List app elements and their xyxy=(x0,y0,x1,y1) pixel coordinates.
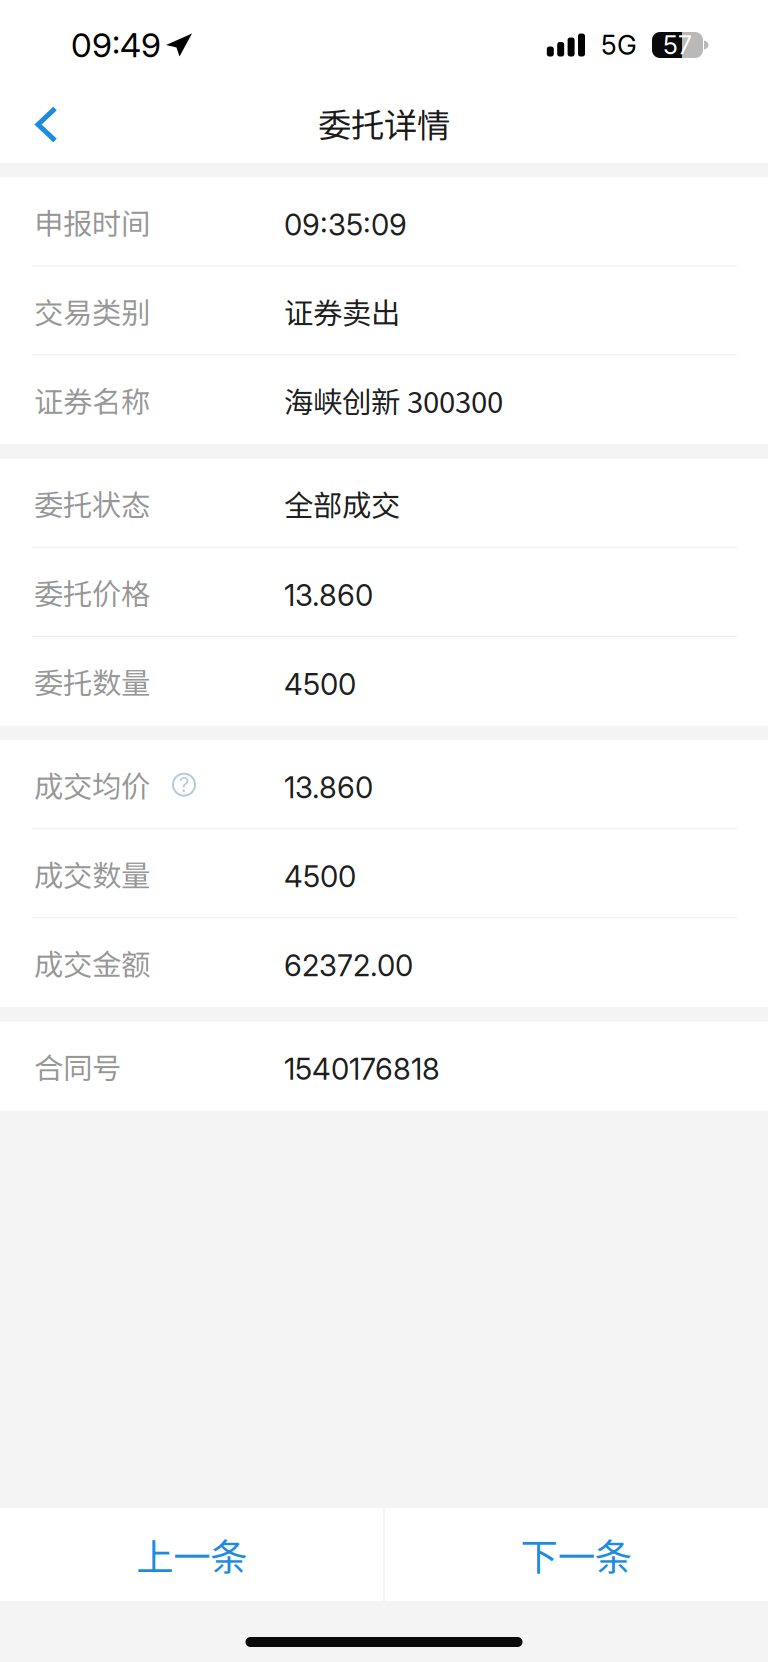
staticText: 09:49 xyxy=(71,25,161,65)
staticText: 13.860 xyxy=(284,770,373,805)
staticText: 09:35:09 xyxy=(284,207,407,243)
staticText: 委托状态 xyxy=(34,482,150,525)
staticText: 证券名称 xyxy=(34,379,150,421)
staticText: 62372.00 xyxy=(284,948,413,983)
button[interactable]: 下一条 xyxy=(385,1508,768,1601)
staticText: 4500 xyxy=(284,859,356,894)
staticText: 成交均价 xyxy=(34,763,150,806)
staticText: 1540176818 xyxy=(284,1051,440,1087)
staticText: 合同号 xyxy=(34,1045,121,1087)
staticText: 申报时间 xyxy=(34,201,150,243)
staticText: 委托价格 xyxy=(34,571,150,614)
staticText: 13.860 xyxy=(284,578,373,613)
staticText: 成交金额 xyxy=(34,941,150,984)
staticText: 57 xyxy=(663,30,692,60)
staticText: 交易类别 xyxy=(34,290,150,332)
staticText: 证券卖出 xyxy=(284,290,400,332)
staticText: 全部成交 xyxy=(284,482,400,525)
staticText: 成交数量 xyxy=(34,852,150,895)
staticText: 4500 xyxy=(284,667,356,702)
staticText: 下一条 xyxy=(521,1527,632,1582)
staticText: 海峡创新 300300 xyxy=(284,379,503,421)
button[interactable]: Back xyxy=(0,90,93,163)
staticText: 上一条 xyxy=(136,1527,247,1582)
staticText: 委托数量 xyxy=(34,660,150,703)
staticText: 5G xyxy=(601,29,637,61)
staticText: 委托详情 xyxy=(318,99,450,147)
staticText: ? xyxy=(179,773,189,797)
button[interactable]: 上一条 xyxy=(0,1508,383,1601)
